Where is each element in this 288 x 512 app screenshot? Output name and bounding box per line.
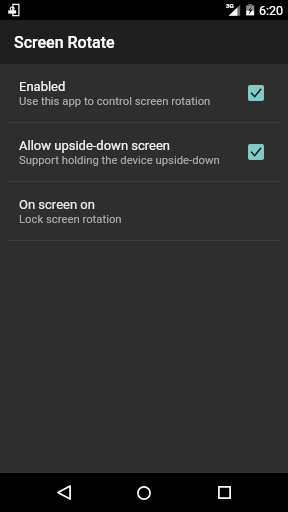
button[interactable]: Home — [112, 473, 176, 512]
staticText: On screen on — [19, 197, 95, 212]
staticText: Allow upside-down screen — [19, 138, 171, 153]
button[interactable]: Recent apps — [192, 473, 256, 512]
staticText: Support holding the device upside-down — [19, 154, 220, 167]
staticText: 6:20 — [259, 3, 284, 18]
button[interactable]: Toggle Allow upside-down screen — [248, 144, 264, 160]
staticText: Screen Rotate — [14, 33, 115, 52]
staticText: Lock screen rotation — [19, 213, 122, 226]
staticText: 3G — [226, 2, 234, 9]
button[interactable]: Allow upside-down screen — [0, 123, 288, 181]
button[interactable]: Enabled — [0, 64, 288, 122]
staticText: Enabled — [19, 79, 66, 94]
button[interactable]: Toggle Enabled — [248, 85, 264, 101]
button[interactable]: On screen on — [0, 182, 288, 240]
button[interactable]: Back — [32, 473, 96, 512]
staticText: Use this app to control screen rotation — [19, 95, 211, 108]
